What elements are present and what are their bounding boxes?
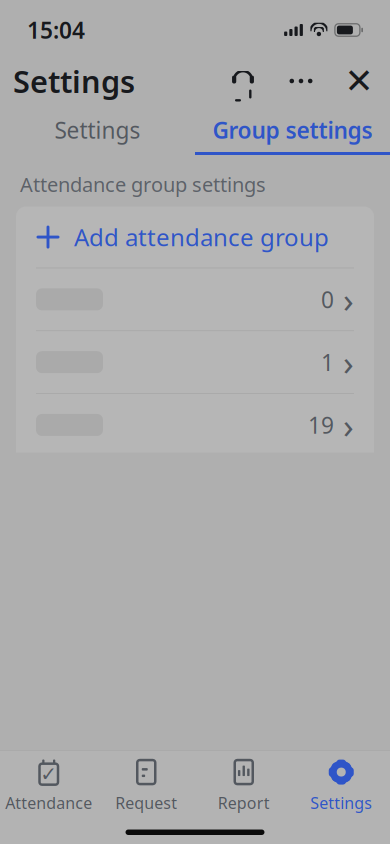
button[interactable]: More options xyxy=(283,63,319,99)
staticText: 19 xyxy=(308,410,334,440)
button[interactable]: 0 xyxy=(16,268,374,330)
button[interactable]: Group settings xyxy=(195,108,390,152)
staticText: 0 xyxy=(321,284,334,314)
button[interactable]: Settings xyxy=(0,108,195,152)
button[interactable]: 19 xyxy=(16,394,374,456)
staticText: Report xyxy=(218,792,270,813)
button[interactable]: Request xyxy=(97,759,195,813)
staticText: Add attendance group xyxy=(74,221,329,253)
button[interactable]: Settings xyxy=(292,759,390,813)
staticText: › xyxy=(343,339,354,385)
staticText: Settings xyxy=(13,61,135,101)
staticText: Settings xyxy=(310,792,372,813)
staticText: 1 xyxy=(321,347,334,377)
staticText: Attendance xyxy=(5,792,92,813)
staticText: Settings xyxy=(54,115,140,145)
button[interactable]: 1 xyxy=(16,331,374,393)
button[interactable]: Customer support xyxy=(225,63,261,99)
staticText: › xyxy=(343,402,354,448)
staticText: ✕ xyxy=(344,61,373,101)
staticText: Attendance group settings xyxy=(20,171,266,198)
staticText: Request xyxy=(115,792,177,813)
button[interactable]: ✓ xyxy=(0,759,97,813)
button[interactable]: Close xyxy=(341,63,377,99)
button[interactable]: Add attendance group xyxy=(16,207,374,268)
staticText: ✓ xyxy=(40,763,57,785)
staticText: Group settings xyxy=(212,115,372,145)
button[interactable]: Report xyxy=(195,759,292,813)
staticText: 15:04 xyxy=(27,15,85,45)
staticText: › xyxy=(343,276,354,322)
